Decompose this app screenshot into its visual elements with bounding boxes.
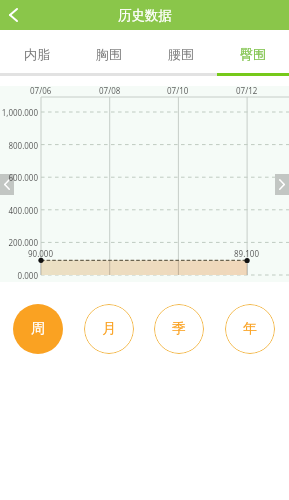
button[interactable]: Next [275, 174, 289, 195]
staticText: 月 [102, 320, 116, 338]
button[interactable]: 周 [13, 304, 63, 354]
staticText: 07/10 [167, 85, 189, 96]
staticText: 400.000 [8, 205, 38, 216]
staticText: 07/12 [236, 85, 258, 96]
staticText: 89.100 [234, 248, 260, 259]
staticText: 内脂 [24, 46, 50, 62]
staticText: 600.000 [8, 172, 38, 183]
staticText: 07/06 [30, 85, 52, 96]
staticText: 年 [243, 320, 257, 338]
button[interactable]: Previous [0, 174, 14, 195]
staticText: 历史数据 [118, 7, 172, 24]
button[interactable]: 季 [154, 304, 204, 354]
button[interactable]: 胸围 [73, 32, 145, 76]
staticText: 胸围 [96, 46, 122, 62]
staticText: 0.000 [17, 270, 38, 281]
staticText: 90.000 [28, 248, 54, 259]
button[interactable]: 年 [225, 304, 275, 354]
staticText: 季 [172, 320, 186, 338]
button[interactable]: 腰围 [145, 32, 217, 76]
button[interactable]: Back [0, 0, 27, 30]
button[interactable]: 臀围 [217, 32, 289, 76]
staticText: 200.000 [8, 237, 38, 248]
staticText: 腰围 [168, 46, 194, 62]
staticText: 臀围 [240, 46, 266, 62]
staticText: 07/08 [99, 85, 121, 96]
staticText: 周 [31, 320, 45, 338]
button[interactable]: 内脂 [0, 32, 73, 76]
staticText: 1,000.000 [1, 107, 38, 118]
staticText: 800.000 [8, 140, 38, 151]
button[interactable]: 月 [84, 304, 134, 354]
